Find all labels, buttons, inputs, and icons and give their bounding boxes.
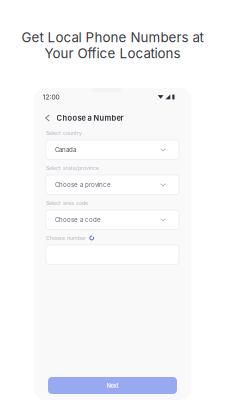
staticText: Select country bbox=[46, 130, 82, 136]
staticText: Next bbox=[106, 382, 118, 389]
staticText: Canada bbox=[55, 146, 76, 153]
staticText: Choose a province bbox=[55, 181, 111, 188]
staticText: Select area code bbox=[46, 200, 88, 206]
button[interactable]: Back bbox=[39, 111, 55, 125]
staticText: Get Local Phone Numbers at bbox=[21, 29, 203, 45]
staticText: Select state/province bbox=[46, 165, 99, 171]
button[interactable]: Canada bbox=[46, 140, 179, 159]
button[interactable]: Choose a code bbox=[46, 210, 179, 229]
button[interactable]: Choose a province bbox=[46, 175, 179, 194]
staticText: Your Office Locations bbox=[44, 45, 180, 61]
staticText: Choose number bbox=[46, 235, 86, 241]
button[interactable]: Next bbox=[48, 377, 177, 394]
staticText: Choose a Number bbox=[56, 113, 123, 122]
staticText: Choose a code bbox=[55, 216, 101, 223]
staticText: 12:00 bbox=[42, 93, 59, 101]
